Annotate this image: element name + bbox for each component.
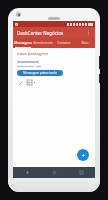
- button[interactable]: Create: [77, 149, 89, 161]
- button[interactable]: Home: [41, 167, 68, 178]
- button[interactable]: Contatos: [53, 38, 74, 47]
- staticText: Contatos: [57, 41, 71, 45]
- staticText: Atendimentos: [33, 41, 53, 45]
- staticText: Mensagens: [14, 41, 32, 45]
- button[interactable]: Mensagem patrocinada: [17, 70, 63, 76]
- button[interactable]: Back: [13, 167, 41, 178]
- staticText: DeskCenter Negócios: [17, 30, 64, 36]
- staticText: Mais: [81, 41, 89, 45]
- button[interactable]: Recent apps: [68, 167, 95, 178]
- staticText: Mensagem patrocinada: [23, 71, 57, 75]
- button[interactable]: Mais: [74, 38, 95, 47]
- button[interactable]: More options: [84, 28, 93, 37]
- button[interactable]: Gallery: [26, 79, 33, 86]
- button[interactable]: nova postagem: [17, 51, 48, 57]
- button[interactable]: Atendimentos: [33, 38, 53, 47]
- button[interactable]: Mensagens: [13, 38, 33, 47]
- button[interactable]: Edit: [17, 79, 24, 86]
